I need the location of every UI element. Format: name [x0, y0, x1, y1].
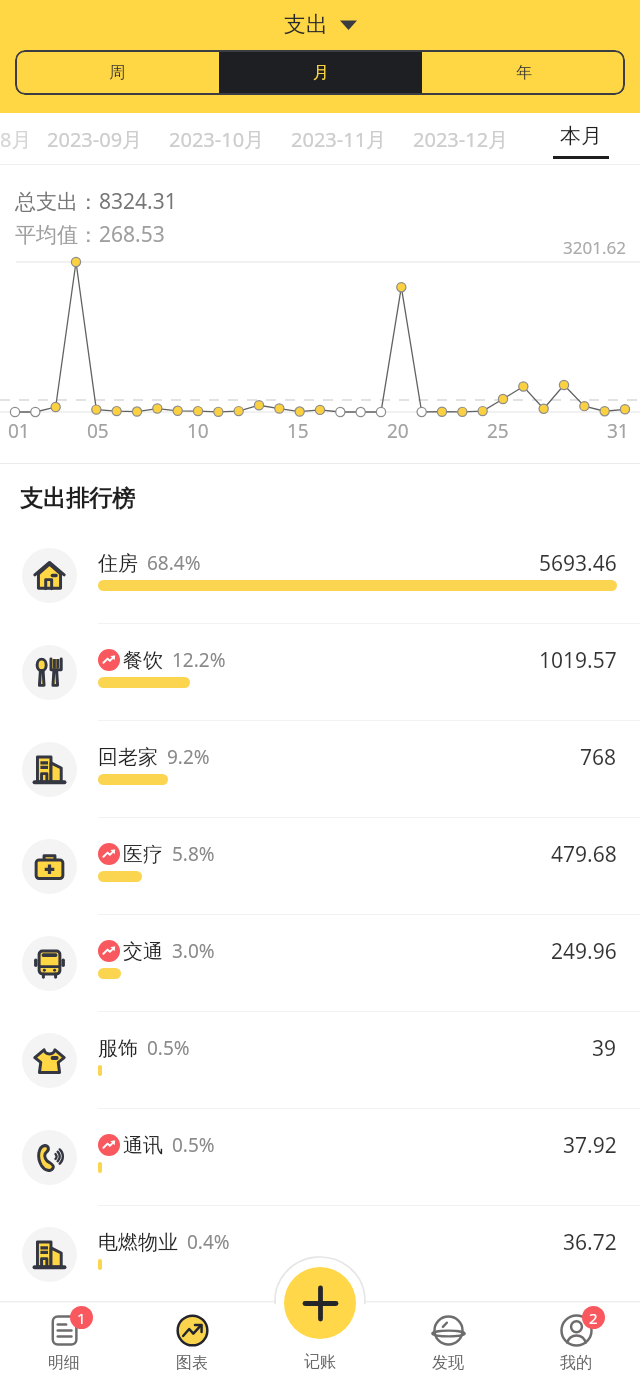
staticText: 0.5% [172, 1132, 215, 1158]
button[interactable]: 电燃物业 [0, 1206, 640, 1303]
button[interactable]: 2023-09月 [34, 113, 156, 165]
staticText: 768 [580, 743, 617, 772]
button[interactable]: 回老家 [0, 721, 640, 818]
button[interactable]: 周 [15, 50, 219, 95]
staticText: 249.96 [551, 937, 617, 966]
staticText: 1 [77, 1308, 86, 1328]
staticText: 支出 [284, 11, 328, 39]
staticText: 25 [487, 418, 509, 444]
staticText: 05 [87, 418, 109, 444]
staticText: 通讯 [123, 1133, 163, 1158]
staticText: 31 [607, 418, 629, 444]
staticText: 0.5% [147, 1035, 190, 1061]
staticText: 本月 [560, 123, 602, 149]
staticText: 服饰 [98, 1036, 138, 1061]
button[interactable]: 记账 [284, 1267, 356, 1339]
button[interactable]: 本月 [522, 113, 640, 165]
button[interactable]: 支出 [274, 7, 367, 43]
button[interactable]: 餐饮 [0, 624, 640, 721]
staticText: 2023-11月 [291, 126, 387, 153]
staticText: 支出排行榜 [20, 484, 135, 513]
staticText: 68.4% [147, 550, 201, 576]
staticText: 交通 [123, 939, 163, 964]
staticText: 9.2% [167, 744, 210, 770]
staticText: 1019.57 [539, 646, 617, 675]
staticText: 8月 [0, 126, 32, 153]
staticText: 电燃物业 [98, 1230, 178, 1255]
button[interactable]: 月 [219, 50, 422, 95]
staticText: 479.68 [551, 840, 617, 869]
button[interactable]: 服饰 [0, 1012, 640, 1109]
button[interactable]: 通讯 [0, 1109, 640, 1206]
staticText: 2 [589, 1308, 598, 1328]
button[interactable]: 年 [422, 50, 625, 95]
button[interactable]: 图表 [128, 1301, 256, 1388]
button[interactable]: 医疗 [0, 818, 640, 915]
button[interactable]: 交通 [0, 915, 640, 1012]
staticText: 5.8% [172, 841, 215, 867]
staticText: 2023-09月 [47, 126, 143, 153]
button[interactable]: 2 [512, 1301, 640, 1388]
staticText: 10 [187, 418, 209, 444]
staticText: 我的 [560, 1353, 592, 1373]
staticText: 0.4% [187, 1229, 230, 1255]
staticText: 月 [313, 63, 329, 83]
staticText: 年 [516, 63, 532, 83]
button[interactable]: 发现 [384, 1301, 512, 1388]
button[interactable]: 住房 [0, 527, 640, 624]
staticText: 医疗 [123, 842, 163, 867]
staticText: 5693.46 [539, 549, 617, 578]
staticText: 36.72 [563, 1228, 617, 1257]
staticText: 发现 [432, 1353, 464, 1373]
button[interactable]: 2023-11月 [278, 113, 400, 165]
staticText: 记账 [304, 1352, 336, 1372]
staticText: 37.92 [563, 1131, 617, 1160]
staticText: 回老家 [98, 745, 158, 770]
staticText: 12.2% [172, 647, 226, 673]
staticText: 2023-10月 [169, 126, 265, 153]
button[interactable]: 8月 [0, 113, 34, 165]
staticText: 3.0% [172, 938, 215, 964]
staticText: 住房 [98, 551, 138, 576]
staticText: 平均值：268.53 [15, 220, 165, 249]
staticText: 周 [109, 63, 125, 83]
staticText: 01 [8, 418, 30, 444]
staticText: 明细 [48, 1353, 80, 1373]
staticText: 20 [387, 418, 409, 444]
staticText: 39 [592, 1034, 617, 1063]
button[interactable]: 记账 [256, 1301, 384, 1388]
staticText: 总支出：8324.31 [15, 187, 177, 216]
staticText: 15 [287, 418, 309, 444]
staticText: 2023-12月 [413, 126, 509, 153]
staticText: 餐饮 [123, 648, 163, 673]
button[interactable]: 2023-12月 [400, 113, 522, 165]
staticText: 图表 [176, 1353, 208, 1373]
button[interactable]: 1 [0, 1301, 128, 1388]
button[interactable]: 2023-10月 [156, 113, 278, 165]
staticText: 3201.62 [563, 236, 626, 259]
